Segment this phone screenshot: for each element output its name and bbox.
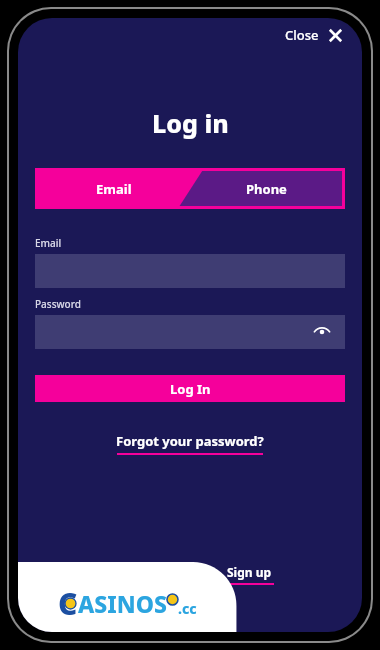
button[interactable]: Sign up xyxy=(223,564,275,585)
staticText: Log in xyxy=(152,106,229,140)
staticText: Log In xyxy=(170,380,211,398)
staticText: Forgot your password? xyxy=(116,432,264,450)
button[interactable]: Forgot your password? xyxy=(114,431,266,456)
button[interactable]: Log In xyxy=(35,375,345,402)
button[interactable]: Close xyxy=(279,22,348,48)
staticText: Email xyxy=(96,180,132,198)
staticText: Phone xyxy=(246,180,287,198)
staticText: Password xyxy=(35,297,81,311)
staticText: ASINOS xyxy=(78,588,167,619)
staticText: unt yet? xyxy=(168,564,214,580)
staticText: C xyxy=(58,583,78,624)
staticText: Email xyxy=(35,236,62,250)
button[interactable]: Phone xyxy=(190,171,342,206)
other: Close xyxy=(329,29,342,42)
button[interactable]: Show password xyxy=(35,315,345,349)
button[interactable]: Show password xyxy=(309,319,335,345)
staticText: Close xyxy=(285,26,319,44)
staticText: .cc xyxy=(178,599,197,618)
staticText: Sign up xyxy=(227,564,272,580)
button[interactable]: Email xyxy=(38,171,190,206)
